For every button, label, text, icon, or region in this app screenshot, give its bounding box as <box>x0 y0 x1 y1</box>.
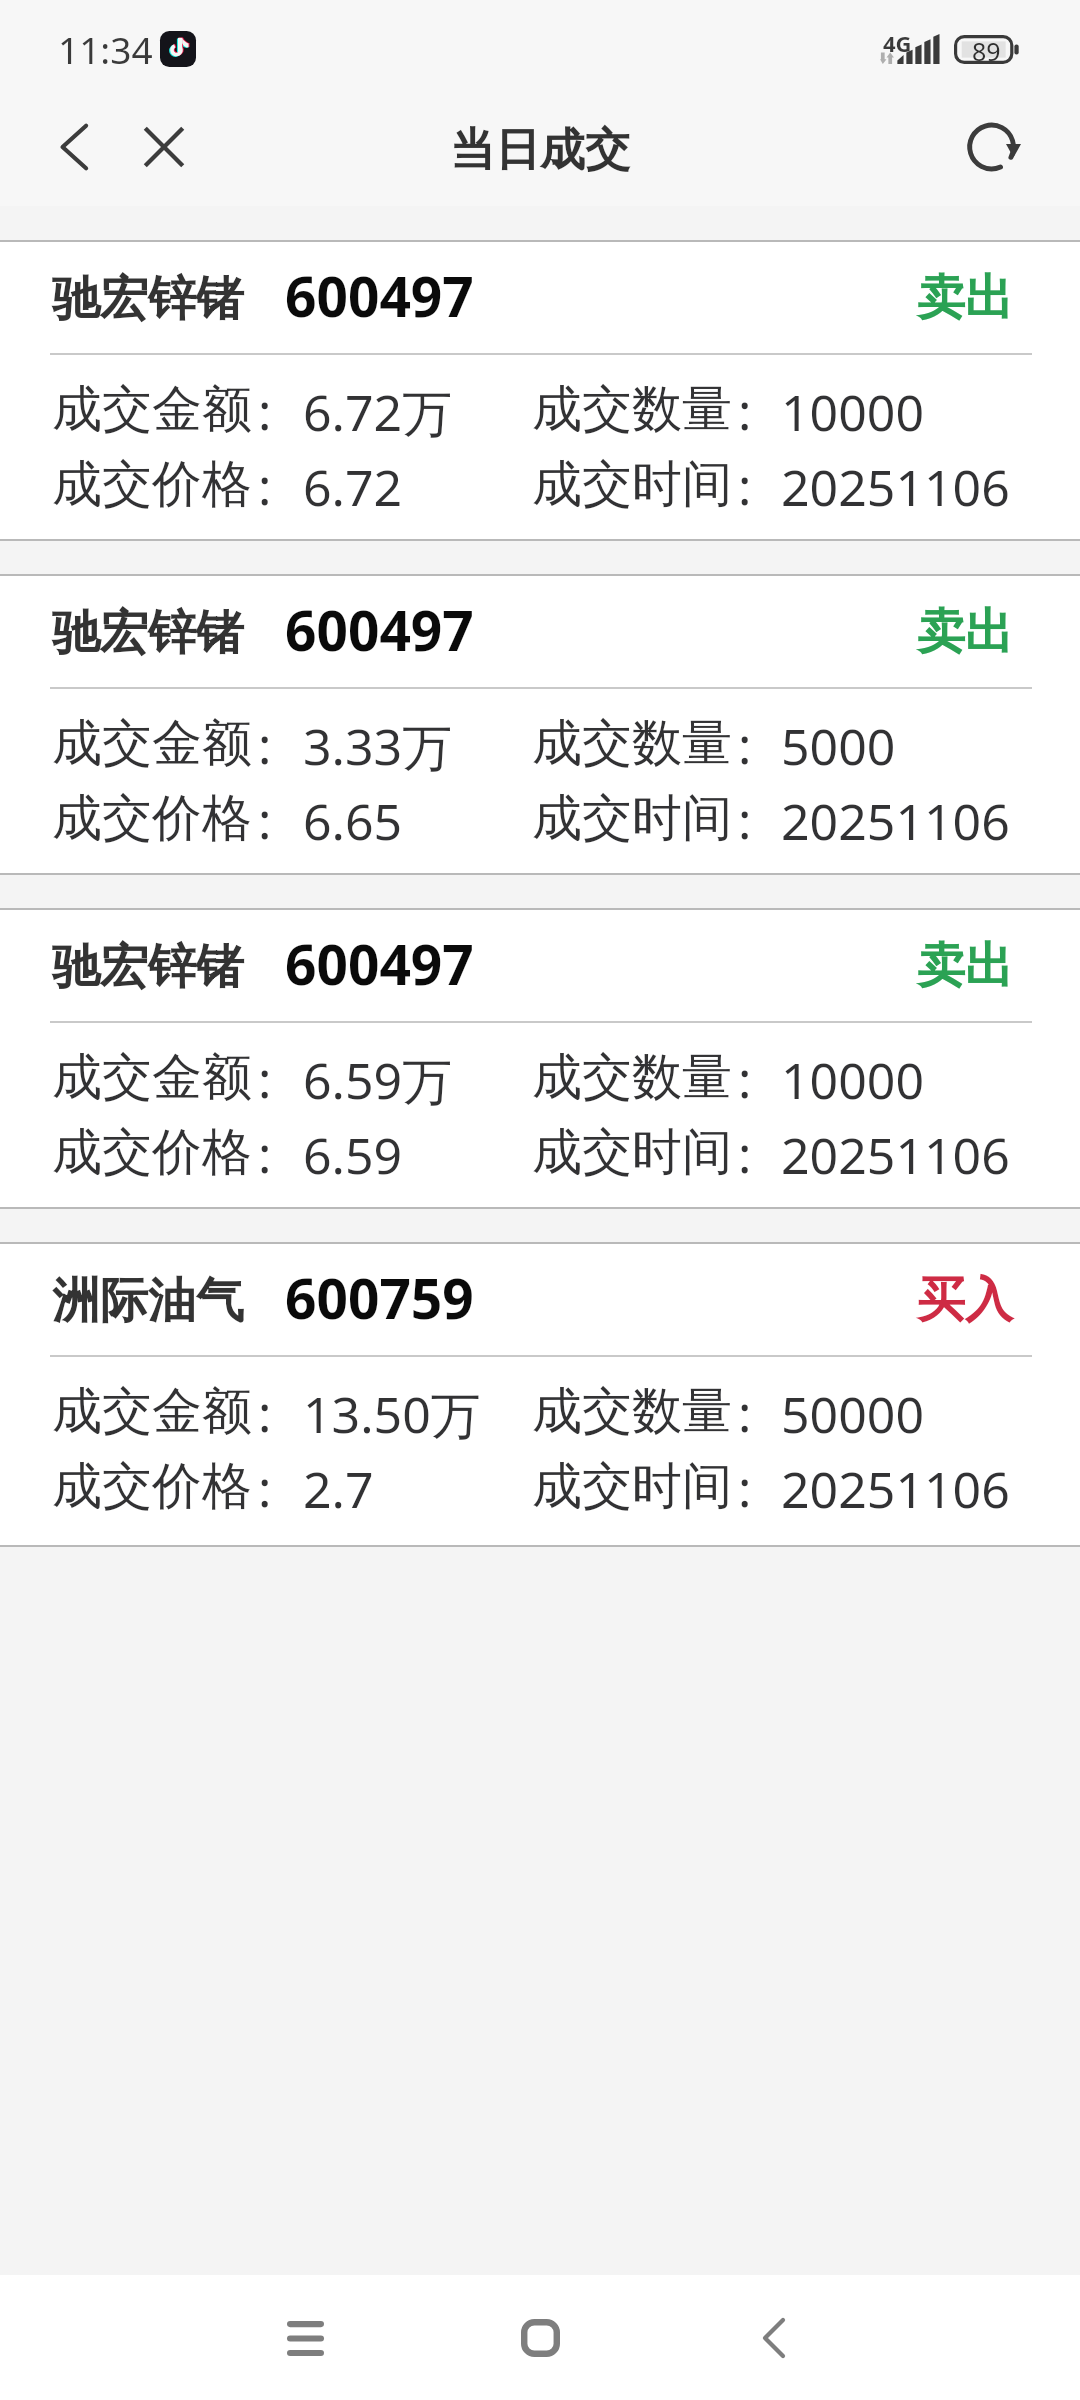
button[interactable]: Back <box>18 88 134 206</box>
staticText: 5000 <box>781 712 896 774</box>
staticText: 驰宏锌锗 <box>52 937 244 997</box>
staticText: 600497 <box>285 926 474 1001</box>
staticText: 600497 <box>285 258 474 333</box>
staticText: 600497 <box>285 592 474 667</box>
staticText: 买入 <box>917 1270 1013 1330</box>
staticText: 2.7 <box>303 1455 374 1517</box>
staticText: 成交时间 <box>532 1121 732 1183</box>
staticText: 成交金额 <box>52 1046 252 1108</box>
staticText: 成交价格 <box>52 453 252 515</box>
staticText: 成交数量 <box>532 1380 732 1442</box>
staticText: 20251106 <box>781 1121 1010 1183</box>
staticText: 卖出 <box>917 936 1013 996</box>
staticText: 卖出 <box>917 268 1013 328</box>
staticText: 50000 <box>781 1380 924 1442</box>
staticText: 成交时间 <box>532 1455 732 1517</box>
staticText: 4G <box>883 28 912 58</box>
staticText: 成交时间 <box>532 787 732 849</box>
staticText: 11:34 <box>58 24 153 74</box>
staticText: : <box>738 377 752 439</box>
staticText: : <box>738 1045 752 1107</box>
staticText: 成交金额 <box>52 712 252 774</box>
staticText: : <box>258 452 272 514</box>
staticText: : <box>738 1120 752 1182</box>
staticText: 6.59 <box>303 1121 403 1183</box>
staticText: 6.72万 <box>303 378 453 440</box>
staticText: 洲际油气 <box>52 1271 244 1331</box>
staticText: : <box>738 711 752 773</box>
button[interactable]: Close <box>114 88 214 206</box>
staticText: : <box>258 1454 272 1516</box>
staticText: 成交时间 <box>532 453 732 515</box>
staticText: : <box>738 786 752 848</box>
staticText: : <box>738 1454 752 1516</box>
button[interactable]: 驰宏锌锗 <box>0 242 1080 539</box>
staticText: 成交价格 <box>52 787 252 849</box>
staticText: 驰宏锌锗 <box>52 269 244 329</box>
staticText: : <box>738 1379 752 1441</box>
staticText: : <box>258 1120 272 1182</box>
staticText: : <box>258 1045 272 1107</box>
staticText: 成交数量 <box>532 378 732 440</box>
staticText: 6.65 <box>303 787 403 849</box>
button[interactable]: Home <box>485 2283 595 2393</box>
staticText: 成交价格 <box>52 1455 252 1517</box>
staticText: : <box>258 786 272 848</box>
button[interactable]: Back <box>720 2283 830 2393</box>
button[interactable]: 洲际油气 <box>0 1244 1080 1545</box>
staticText: 卖出 <box>917 602 1013 662</box>
staticText: 10000 <box>781 1046 924 1108</box>
staticText: 成交金额 <box>52 1380 252 1442</box>
button[interactable]: Refresh <box>932 88 1056 206</box>
staticText: 20251106 <box>781 1455 1010 1517</box>
staticText: : <box>258 711 272 773</box>
staticText: 89 <box>972 34 1001 63</box>
staticText: 成交数量 <box>532 712 732 774</box>
staticText: 驰宏锌锗 <box>52 603 244 663</box>
button[interactable]: 驰宏锌锗 <box>0 576 1080 873</box>
button[interactable]: Recents <box>250 2283 360 2393</box>
staticText: : <box>738 452 752 514</box>
staticText: : <box>258 1379 272 1441</box>
staticText: 20251106 <box>781 453 1010 515</box>
staticText: 当日成交 <box>450 122 630 179</box>
staticText: 10000 <box>781 378 924 440</box>
staticText: 成交数量 <box>532 1046 732 1108</box>
staticText: 成交价格 <box>52 1121 252 1183</box>
button[interactable]: 驰宏锌锗 <box>0 910 1080 1207</box>
staticText: 6.72 <box>303 453 403 515</box>
staticText: 13.50万 <box>303 1380 481 1442</box>
staticText: 20251106 <box>781 787 1010 849</box>
staticText: 3.33万 <box>303 712 453 774</box>
staticText: : <box>258 377 272 439</box>
staticText: 成交金额 <box>52 378 252 440</box>
staticText: 600759 <box>285 1260 474 1335</box>
staticText: 6.59万 <box>303 1046 453 1108</box>
